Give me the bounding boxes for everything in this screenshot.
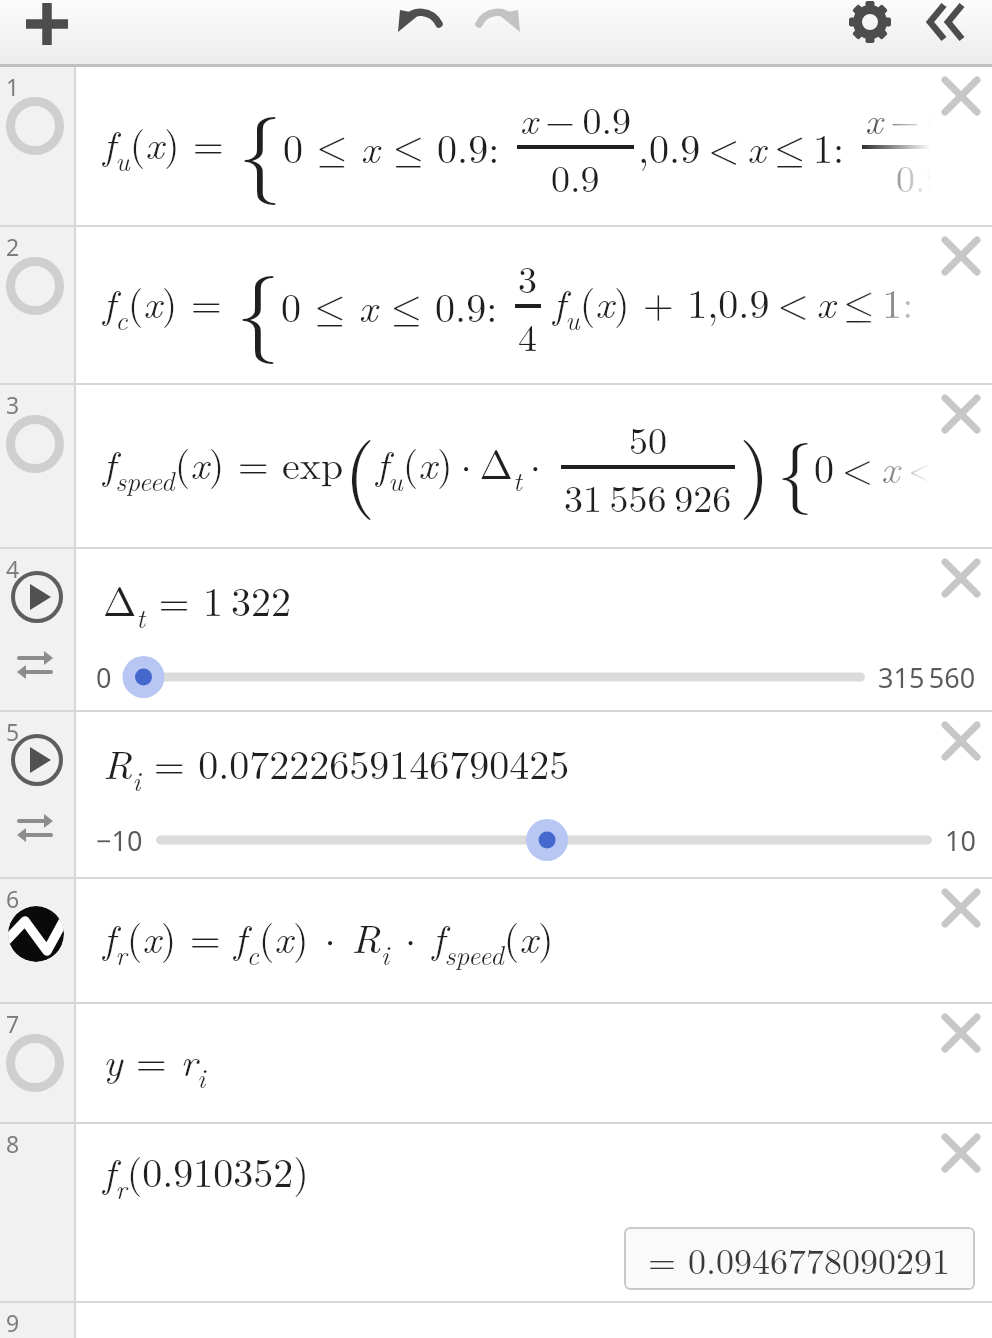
button[interactable]: = 0.0946778090291: [624, 1227, 975, 1290]
staticText: 0 < x <: [814, 438, 939, 495]
staticText: {: [236, 243, 281, 368]
staticText: Ri = 0.07222659146790425: [103, 734, 570, 799]
staticText: 3: [6, 389, 20, 420]
button[interactable]: [472, 6, 522, 40]
button[interactable]: [15, 649, 55, 681]
staticText: fr(0.910352): [103, 1142, 309, 1207]
staticText: 4: [518, 308, 538, 362]
button[interactable]: [6, 415, 64, 473]
button[interactable]: [928, 4, 966, 40]
staticText: 0 ≤ x ≤ 0.9:: [283, 118, 513, 175]
staticText: 9: [6, 1307, 20, 1338]
staticText: fu(x) · Δt ·: [376, 434, 557, 499]
staticText: 8: [6, 1128, 20, 1159]
button[interactable]: [943, 723, 979, 759]
staticText: fspeed(x) = exp: [103, 434, 344, 499]
staticText: = 0.0946778090291: [648, 1233, 951, 1284]
button[interactable]: [25, 2, 69, 46]
staticText: 50: [629, 411, 668, 465]
button[interactable]: [6, 97, 64, 155]
staticText: fu(x) + 1,0.9 < x ≤ 1:: [545, 273, 914, 338]
staticText: 2: [6, 231, 20, 262]
staticText: 0.9: [551, 149, 600, 203]
button[interactable]: [10, 570, 64, 624]
button[interactable]: [8, 906, 64, 962]
button[interactable]: [943, 78, 979, 114]
staticText: y = ri: [103, 1031, 206, 1096]
staticText: 5: [6, 716, 20, 747]
staticText: fu(x) =: [103, 114, 238, 179]
button[interactable]: [943, 560, 979, 596]
staticText: {: [238, 84, 283, 209]
staticText: {: [777, 416, 814, 518]
staticText: (: [344, 410, 376, 523]
button[interactable]: [6, 257, 64, 315]
staticText: Δt = 1 322: [103, 571, 292, 636]
button[interactable]: [15, 812, 55, 844]
staticText: 7: [6, 1008, 20, 1039]
staticText: 3: [518, 250, 538, 304]
button[interactable]: [943, 890, 979, 926]
button[interactable]: [943, 238, 979, 274]
button[interactable]: [156, 818, 932, 862]
staticText: x − 0.9: [865, 91, 976, 145]
button[interactable]: [396, 6, 446, 40]
staticText: 1: [6, 71, 20, 102]
staticText: 0 ≤ x ≤ 0.9:: [281, 277, 511, 334]
staticText: 0: [96, 659, 112, 696]
button[interactable]: [943, 396, 979, 432]
staticText: ,0.9 < x ≤ 1:: [638, 118, 858, 175]
staticText: 10: [945, 822, 976, 859]
staticText: 4: [6, 553, 20, 584]
staticText: fc(x) =: [103, 273, 236, 338]
button[interactable]: [943, 1015, 979, 1051]
staticText: −10: [96, 822, 143, 859]
button[interactable]: [6, 1034, 64, 1092]
staticText: fr(x) = fc(x) · Ri · fspeed(x): [103, 908, 554, 973]
button[interactable]: [943, 1135, 979, 1171]
staticText: x − 0.9: [520, 91, 631, 145]
staticText: 31 556 926: [564, 469, 732, 523]
button[interactable]: [125, 655, 865, 699]
staticText: 0.9: [896, 149, 945, 203]
button[interactable]: [10, 733, 64, 787]
staticText: ): [739, 410, 771, 523]
staticText: 315 560: [878, 659, 976, 696]
staticText: 6: [6, 883, 20, 914]
button[interactable]: [848, 0, 892, 44]
